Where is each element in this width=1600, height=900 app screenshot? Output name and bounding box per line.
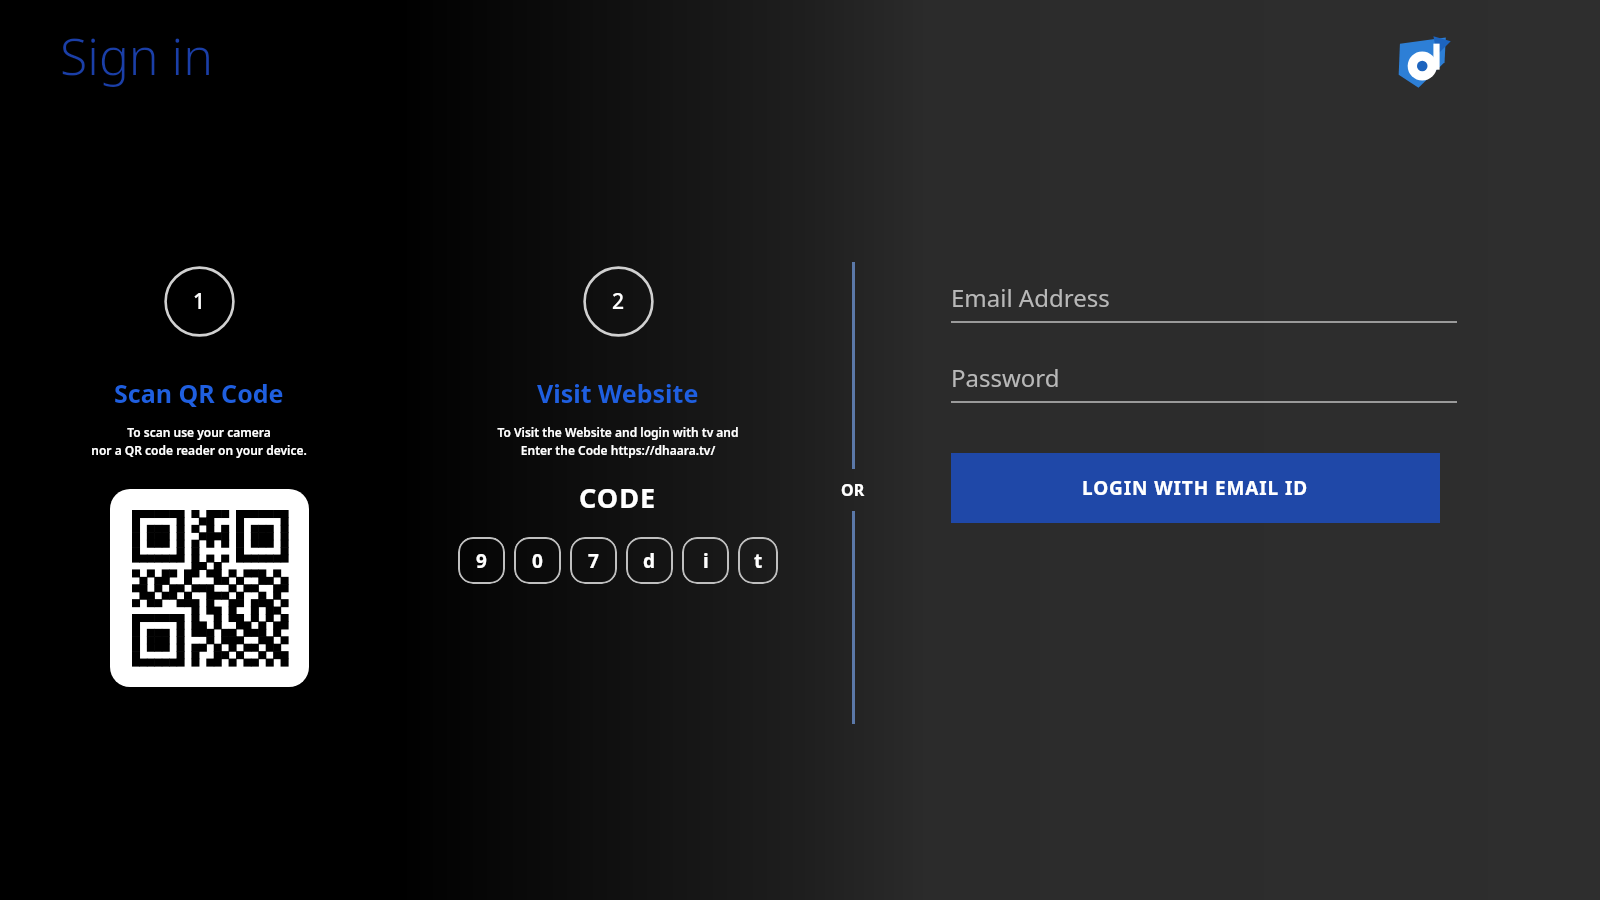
button[interactable]: QR code — [110, 489, 309, 687]
staticText: Password — [951, 361, 1060, 394]
staticText: 7 — [588, 548, 599, 574]
staticText: Email Address — [951, 281, 1110, 314]
button[interactable]: 7 — [570, 537, 617, 584]
staticText: 2 — [612, 287, 625, 316]
staticText: Scan QR Code — [114, 376, 284, 410]
button[interactable]: Sign in — [60, 22, 213, 90]
staticText: d — [643, 548, 656, 574]
staticText: t — [754, 548, 763, 574]
button[interactable]: Dhaara logo — [1390, 30, 1452, 92]
staticText: LOGIN WITH EMAIL ID — [1082, 475, 1309, 501]
button[interactable]: 9 — [458, 537, 505, 584]
staticText: 1 — [193, 287, 206, 316]
staticText: Visit Website — [537, 376, 699, 410]
button[interactable]: 0 — [514, 537, 561, 584]
button[interactable]: t — [738, 537, 778, 584]
button[interactable]: Email Address — [951, 281, 1457, 323]
staticText: CODE — [579, 479, 657, 516]
button[interactable]: i — [682, 537, 729, 584]
staticText: 0 — [532, 548, 543, 574]
button[interactable]: Password — [951, 361, 1457, 403]
staticText: 9 — [476, 548, 487, 574]
staticText: i — [703, 548, 709, 574]
button[interactable]: LOGIN WITH EMAIL ID — [951, 453, 1440, 523]
staticText: To Visit the Website and login with tv a… — [497, 424, 739, 459]
staticText: OR — [841, 479, 865, 501]
staticText: To scan use your camera nor a QR code re… — [91, 424, 307, 459]
button[interactable]: d — [626, 537, 673, 584]
